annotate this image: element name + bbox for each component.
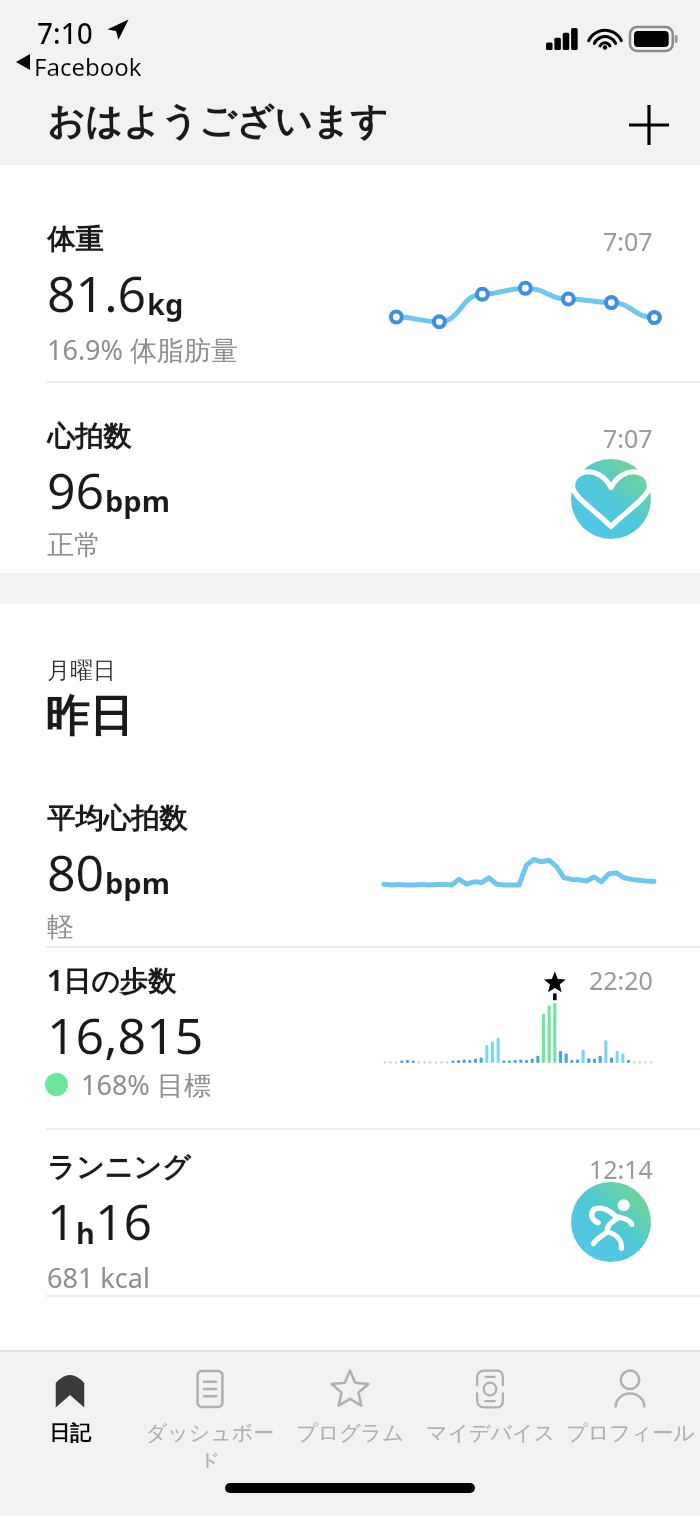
button[interactable]: 日記 — [0, 1352, 140, 1468]
button[interactable]: マイデバイス — [420, 1352, 560, 1468]
staticText: ランニング — [47, 1150, 191, 1185]
staticText: 正常 — [47, 528, 101, 562]
staticText: kg — [147, 284, 184, 323]
staticText: マイデバイス — [426, 1420, 555, 1446]
staticText: 日記 — [49, 1420, 91, 1446]
button[interactable]: 心拍数 — [0, 383, 700, 573]
staticText: 体重 — [47, 222, 103, 257]
staticText: 7:10 — [37, 14, 93, 52]
staticText: 平均心拍数 — [47, 801, 187, 836]
button[interactable]: 1日の歩数 — [0, 948, 700, 1128]
staticText: プロフィール — [566, 1420, 695, 1446]
button[interactable]: Facebook — [34, 50, 142, 83]
staticText: 80 — [47, 838, 105, 906]
staticText: 月曜日 — [47, 656, 116, 685]
staticText: おはようございます — [47, 98, 388, 145]
button[interactable]: 体重 — [0, 165, 700, 381]
button[interactable]: Add — [616, 92, 682, 158]
button[interactable]: 平均心拍数 — [0, 791, 700, 946]
staticText: 7:07 — [603, 224, 653, 258]
staticText: 昨日 — [45, 689, 133, 744]
button[interactable]: プログラム — [280, 1352, 420, 1468]
staticText: 軽 — [47, 910, 74, 944]
staticText: 22:20 — [589, 963, 653, 997]
staticText: 16.9% 体脂肪量 — [47, 331, 239, 368]
staticText: 81.6 — [47, 259, 147, 327]
staticText: bpm — [105, 863, 170, 902]
staticText: 1日の歩数 — [47, 961, 176, 999]
staticText: 16,815 — [47, 1001, 204, 1069]
staticText: プログラム — [296, 1420, 404, 1446]
staticText: 681 kcal — [47, 1259, 150, 1296]
staticText: ダッシュボード — [140, 1420, 280, 1468]
staticText: bpm — [105, 481, 170, 520]
staticText: 心拍数 — [47, 419, 131, 454]
staticText: 168% 目標 — [81, 1066, 211, 1103]
staticText: 7:07 — [603, 421, 653, 455]
staticText: 96 — [47, 456, 105, 524]
staticText: 1 — [47, 1187, 76, 1255]
staticText: 16 — [95, 1187, 153, 1255]
button[interactable]: ランニング — [0, 1130, 700, 1295]
button[interactable]: ダッシュボード — [140, 1352, 280, 1468]
staticText: h — [76, 1213, 95, 1252]
button[interactable]: プロフィール — [560, 1352, 700, 1468]
staticText: 12:14 — [589, 1152, 653, 1186]
